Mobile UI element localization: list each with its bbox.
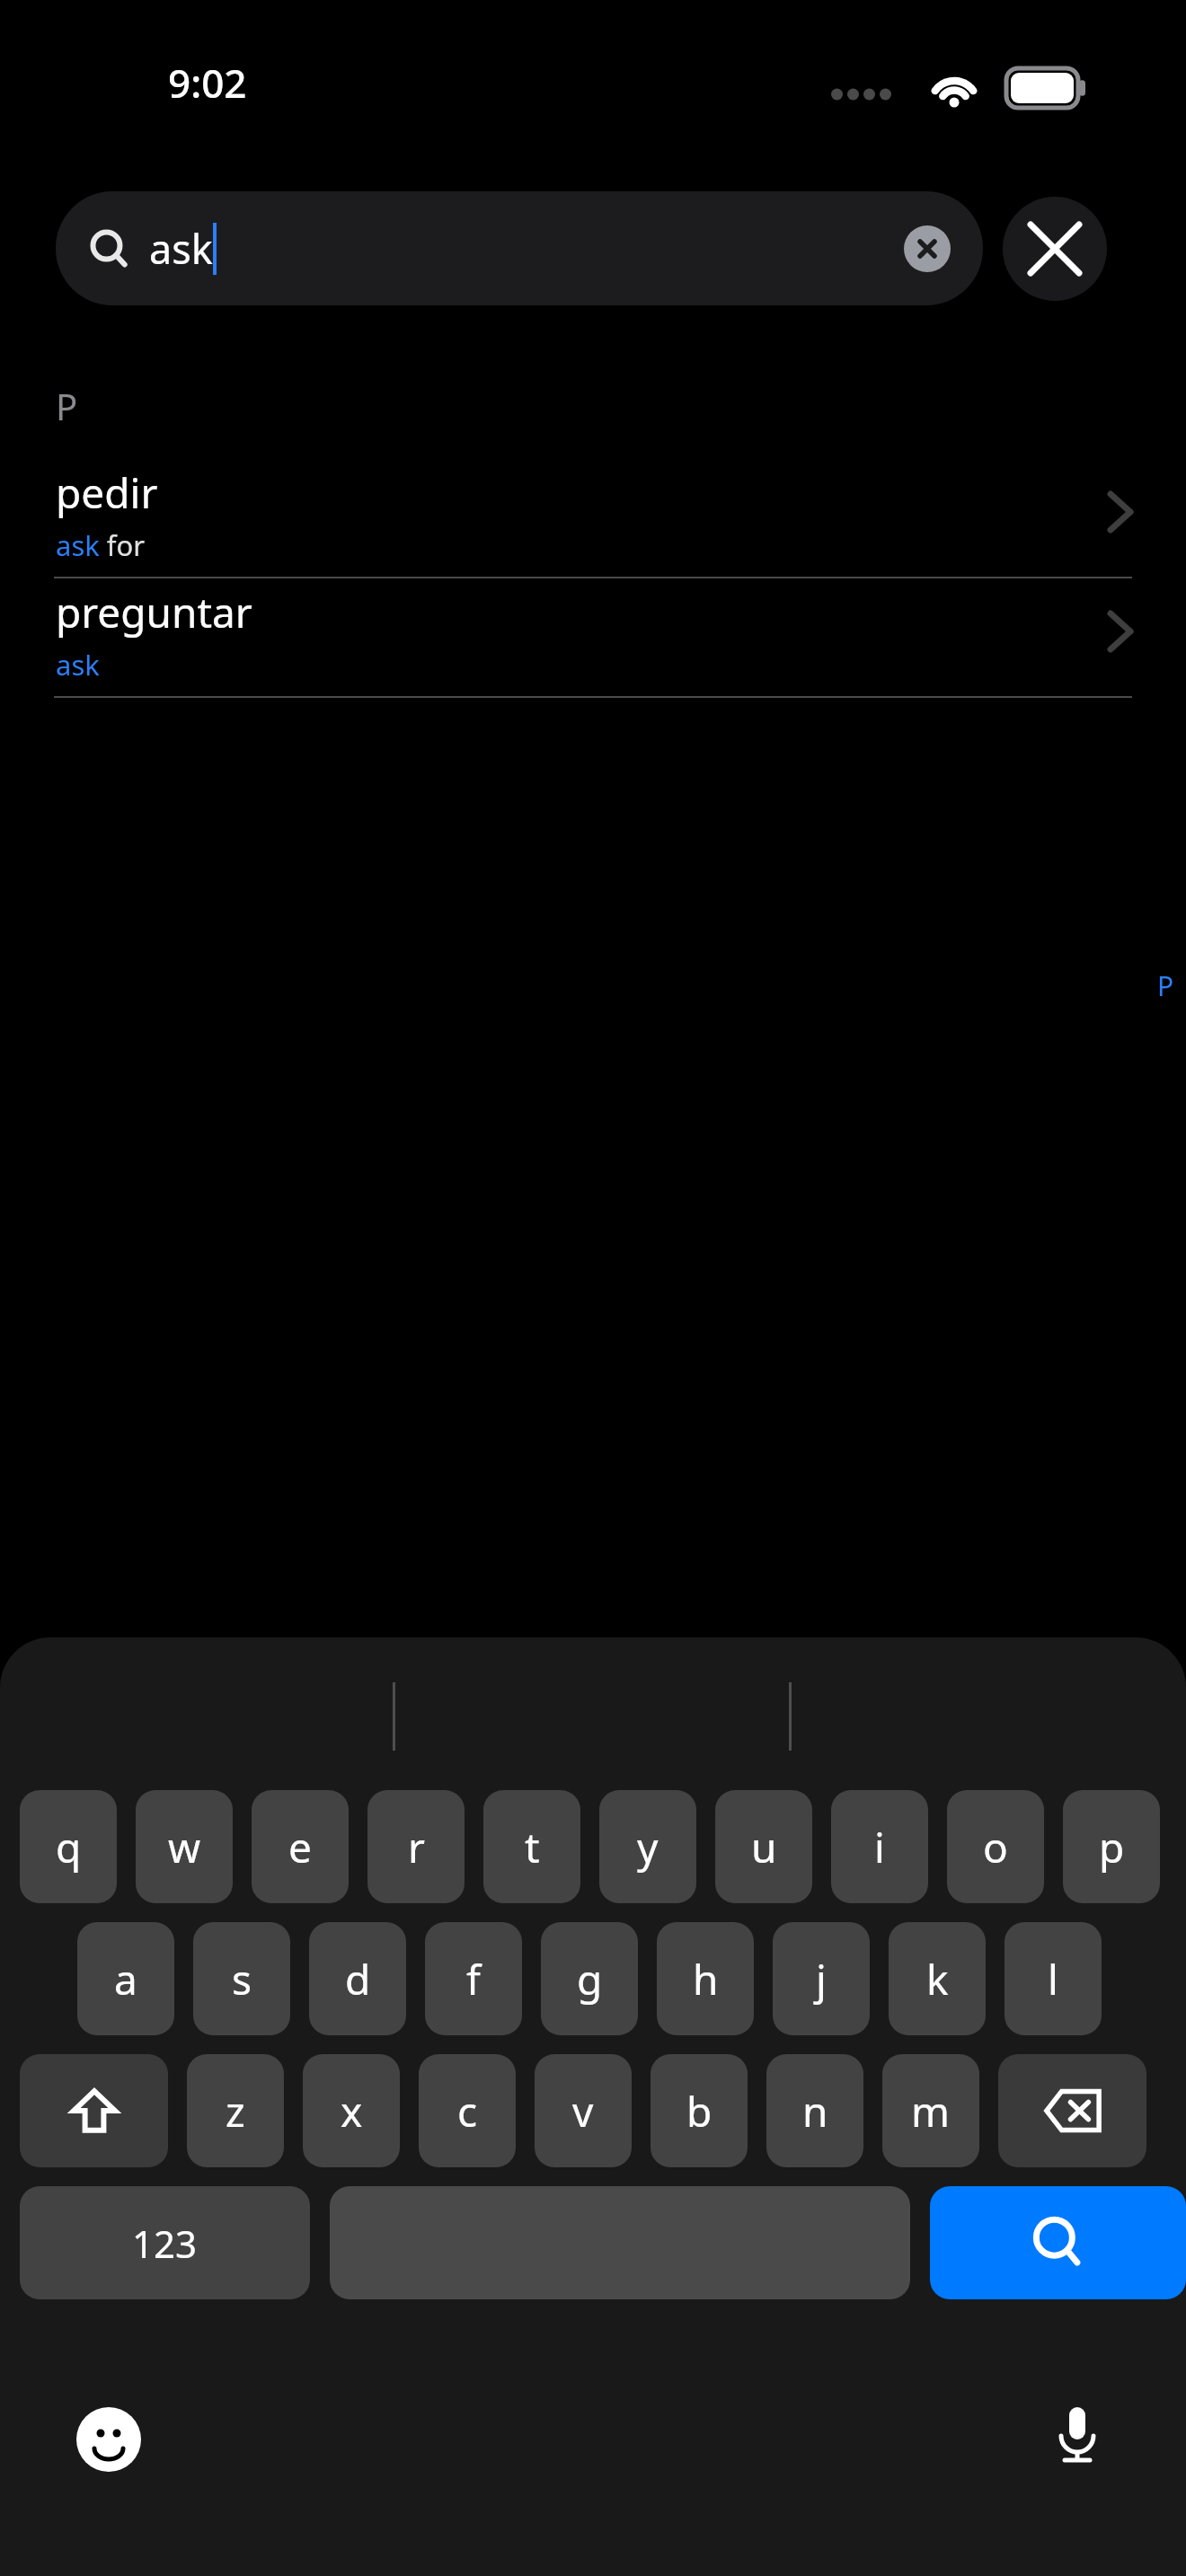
button[interactable]: b [651,2054,748,2167]
button[interactable]: n [766,2054,863,2167]
staticText: ask [149,221,213,276]
button[interactable]: preguntar [0,578,1186,698]
button[interactable]: f [425,1922,522,2035]
button[interactable]: Search [930,2186,1186,2299]
button[interactable]: 123 [20,2186,310,2299]
button[interactable]: q [20,1790,117,1903]
staticText: k [926,1951,949,2007]
staticText: h [693,1951,719,2007]
button[interactable]: v [535,2054,632,2167]
button[interactable]: x [303,2054,400,2167]
button[interactable]: Space [330,2186,910,2299]
button[interactable]: Voice input [1039,2396,1116,2474]
staticText: y [637,1819,659,1875]
button[interactable]: Shift [20,2054,168,2167]
button[interactable]: z [187,2054,284,2167]
button[interactable]: h [657,1922,754,2035]
staticText: z [226,2083,245,2139]
button[interactable]: c [419,2054,516,2167]
staticText: m [911,2083,951,2139]
staticText: ask [56,646,100,684]
staticText: n [802,2083,828,2139]
button[interactable]: d [309,1922,406,2035]
staticText: p [1099,1819,1125,1875]
staticText: f [466,1951,481,2007]
staticText: 9:02 [168,56,247,110]
button[interactable]: e [252,1790,349,1903]
staticText: g [577,1951,603,2007]
button[interactable]: a [77,1922,174,2035]
button[interactable]: w [136,1790,233,1903]
staticText: u [751,1819,777,1875]
staticText: e [288,1819,312,1875]
staticText: i [874,1819,885,1875]
staticText: preguntar [56,584,252,640]
button[interactable]: Emoji [70,2401,147,2478]
button[interactable]: o [947,1790,1044,1903]
staticText: c [457,2083,478,2139]
staticText: a [114,1951,137,2007]
staticText: x [341,2083,363,2139]
staticText: s [232,1951,252,2007]
button[interactable]: pedir [0,459,1186,578]
staticText: 123 [132,2218,198,2269]
button[interactable]: Backspace [998,2054,1146,2167]
staticText: P [56,382,78,430]
staticText: r [408,1819,425,1875]
button[interactable]: p [1063,1790,1160,1903]
button[interactable]: Clear text [904,225,951,272]
button[interactable]: k [889,1922,986,2035]
button[interactable]: s [193,1922,290,2035]
button[interactable]: g [541,1922,638,2035]
staticText: d [345,1951,371,2007]
button[interactable]: t [483,1790,580,1903]
staticText: t [525,1819,540,1875]
button[interactable]: ask [56,191,983,305]
button[interactable]: y [599,1790,696,1903]
staticText: o [983,1819,1008,1875]
button[interactable]: r [367,1790,465,1903]
button[interactable]: m [882,2054,979,2167]
button[interactable]: j [773,1922,870,2035]
staticText: q [56,1819,82,1875]
button[interactable]: Close search [1003,197,1107,301]
staticText: P [1157,967,1174,1004]
staticText: w [168,1819,201,1875]
button[interactable]: i [831,1790,928,1903]
staticText: ask for [56,526,146,564]
staticText: b [686,2083,712,2139]
staticText: l [1048,1951,1058,2007]
button[interactable]: l [1005,1922,1102,2035]
staticText: pedir [56,464,158,521]
staticText: j [816,1951,827,2007]
staticText: v [572,2083,594,2139]
button[interactable]: u [715,1790,812,1903]
